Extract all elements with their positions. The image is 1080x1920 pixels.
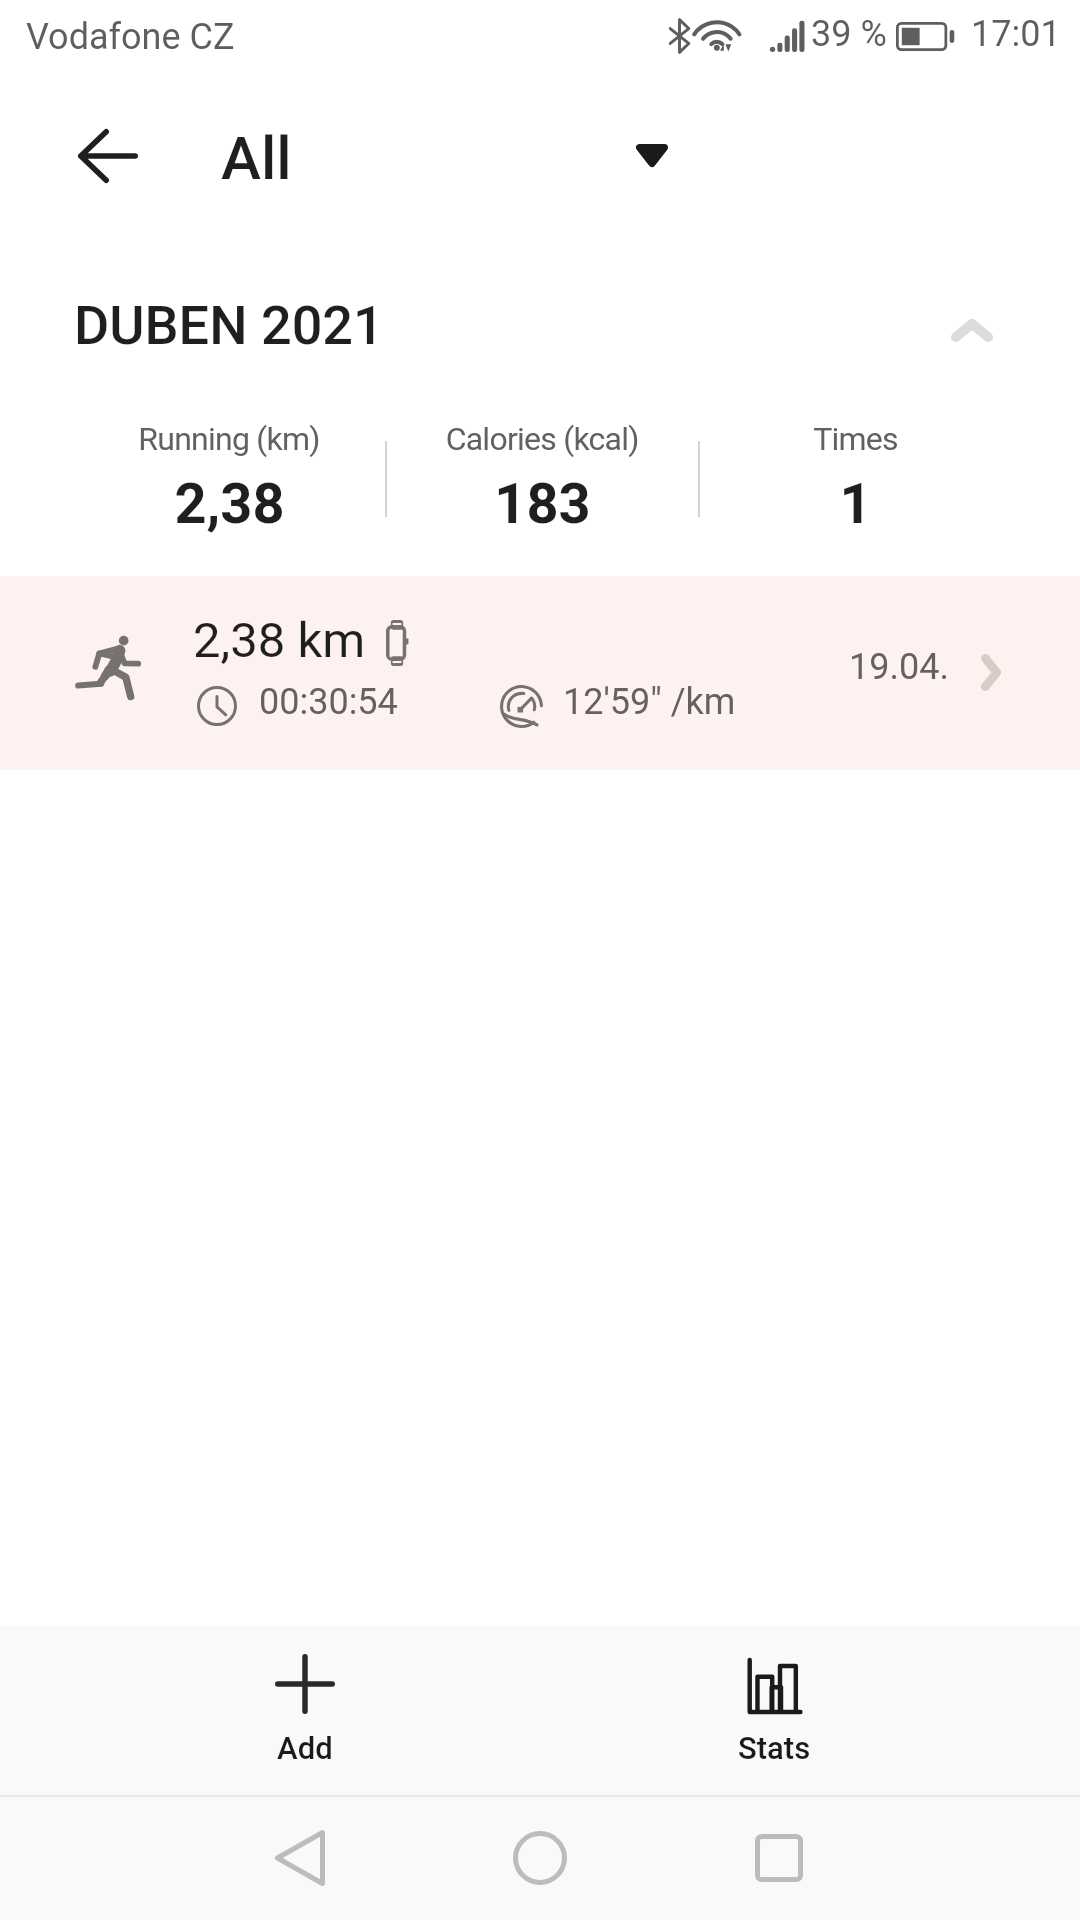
staticText: DUBEN 2021 bbox=[74, 294, 384, 357]
staticText: 2,38 km bbox=[193, 612, 366, 669]
staticText: 2,38 bbox=[174, 471, 285, 537]
staticText: 19.04. bbox=[849, 646, 949, 688]
staticText: 1 bbox=[839, 471, 872, 537]
staticText: Running (km) bbox=[138, 420, 320, 458]
staticText: 12'59" /km bbox=[563, 681, 736, 723]
button[interactable]: Recents bbox=[719, 1795, 839, 1920]
staticText: Stats bbox=[738, 1730, 811, 1766]
staticText: Vodafone CZ bbox=[26, 16, 235, 58]
staticText: Calories (kcal) bbox=[446, 420, 639, 458]
staticText: 17:01 bbox=[971, 13, 1061, 55]
button[interactable]: 2,38 km bbox=[0, 576, 1080, 770]
staticText: 183 bbox=[494, 471, 591, 537]
button[interactable]: Back bbox=[240, 1795, 360, 1920]
button[interactable]: Add bbox=[155, 1626, 455, 1795]
staticText: 39 % bbox=[811, 13, 887, 55]
staticText: Times bbox=[813, 420, 898, 458]
staticText: 00:30:54 bbox=[259, 681, 398, 723]
staticText: All bbox=[221, 123, 292, 193]
button[interactable]: Stats bbox=[624, 1626, 924, 1795]
button[interactable]: Home bbox=[480, 1795, 600, 1920]
staticText: Add bbox=[277, 1730, 333, 1766]
button[interactable]: Back bbox=[62, 110, 154, 202]
button[interactable]: All bbox=[200, 110, 670, 202]
button[interactable]: DUBEN 2021 bbox=[0, 265, 1080, 385]
